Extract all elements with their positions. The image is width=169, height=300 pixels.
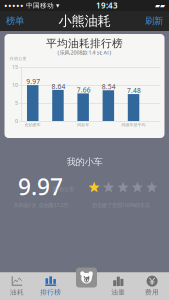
staticText: ▾ <box>56 2 59 9</box>
button[interactable] <box>68 272 101 300</box>
button[interactable]: 费用 <box>135 272 169 300</box>
button[interactable]: 排行榜 <box>34 272 68 300</box>
staticText: 刷新 <box>145 15 163 27</box>
staticText: 您击败了全国100%的车友 <box>92 201 150 209</box>
staticText: 8.64 <box>51 82 65 91</box>
staticText: 8.54 <box>102 82 116 91</box>
staticText: 油量 <box>111 288 125 296</box>
staticText: 同款车 <box>77 122 89 127</box>
staticText: 油耗 <box>10 288 24 296</box>
button[interactable]: 油量 <box>101 272 135 300</box>
staticText: 10 <box>12 81 18 89</box>
staticText: 小熊油耗 <box>58 13 110 29</box>
button[interactable]: 刷新 <box>142 12 166 30</box>
staticText: ••••• <box>4 0 24 12</box>
staticText: 15 <box>12 63 18 71</box>
button[interactable]: 小熊 <box>76 267 97 287</box>
staticText: 您的爱车 <box>25 122 41 127</box>
staticText: 同级车型平均 <box>122 122 146 127</box>
staticText: 榜单 <box>6 15 24 27</box>
staticText: 共加油1次 总油量57.2升 <box>13 201 68 209</box>
staticText: 费用 <box>145 288 159 296</box>
staticText: 9.97 <box>26 77 40 86</box>
staticText: ▰▰ <box>155 2 165 9</box>
staticText: 5 <box>15 99 18 107</box>
staticText: 升/百公里 <box>52 185 74 193</box>
staticText: 中国移动 <box>24 1 56 10</box>
staticText: 升/百公里 <box>9 56 26 61</box>
button[interactable]: 榜单 <box>3 12 27 30</box>
staticText: 0 <box>15 117 18 125</box>
staticText: 7.66 <box>77 85 91 94</box>
button[interactable]: 油耗 <box>0 272 34 300</box>
staticText: 19:43 <box>96 0 118 11</box>
staticText: 平均油耗排行榜 <box>46 37 123 50</box>
staticText: 我的小车 <box>66 156 102 168</box>
staticText: 9.97 <box>18 171 63 201</box>
staticText: (乐风 2008款 1.4 SE AT) <box>57 49 111 56</box>
staticText: 7.48 <box>127 86 141 95</box>
staticText: 排行榜 <box>40 288 61 296</box>
